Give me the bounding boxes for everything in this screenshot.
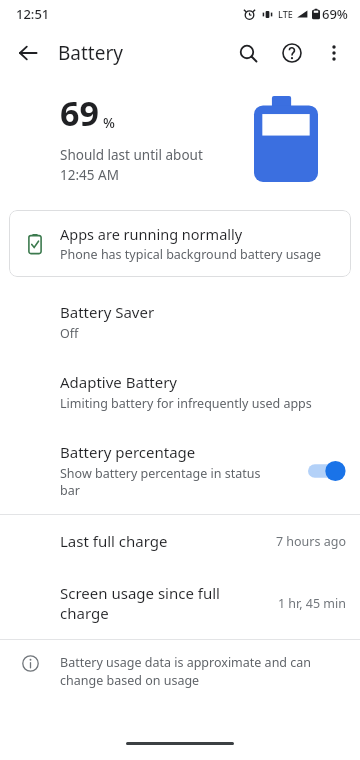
staticText: Off xyxy=(60,325,79,342)
staticText: 7 hours ago xyxy=(275,533,346,550)
staticText: 1 hr, 45 min xyxy=(277,595,346,612)
staticText: 69% xyxy=(322,5,348,23)
button[interactable]: Battery percentage toggle xyxy=(306,460,346,482)
button[interactable]: Back xyxy=(6,31,50,75)
staticText: Phone has typical background battery usa… xyxy=(60,246,322,263)
button[interactable]: Search xyxy=(226,31,270,75)
staticText: Last full charge xyxy=(60,531,265,551)
button[interactable]: Help xyxy=(270,31,314,75)
button[interactable]: Adaptive Battery xyxy=(0,357,360,427)
staticText: 69 xyxy=(60,90,99,136)
button[interactable]: Apps are running normally xyxy=(9,210,351,277)
staticText: Battery xyxy=(58,40,123,66)
staticText: Battery percentage xyxy=(60,442,196,462)
staticText: Battery usage data is approximate and ca… xyxy=(60,654,312,689)
staticText: Show battery percentage in status bar xyxy=(60,465,261,499)
staticText: Limiting battery for infrequently used a… xyxy=(60,395,312,412)
button[interactable]: More options xyxy=(314,33,354,73)
staticText: Adaptive Battery xyxy=(60,372,178,392)
staticText: % xyxy=(103,113,115,132)
staticText: Screen usage since full charge xyxy=(60,583,267,623)
staticText: 12:51 xyxy=(16,5,50,23)
staticText: Should last until about 12:45 AM xyxy=(60,146,203,184)
staticText: Apps are running normally xyxy=(60,224,243,244)
button[interactable]: Battery percentage xyxy=(0,427,360,514)
button[interactable]: Last full charge xyxy=(0,515,360,567)
staticText: LTE xyxy=(278,8,293,20)
staticText: Battery Saver xyxy=(60,302,155,322)
button[interactable]: Screen usage since full charge xyxy=(0,567,360,639)
button[interactable]: Battery Saver xyxy=(0,287,360,357)
